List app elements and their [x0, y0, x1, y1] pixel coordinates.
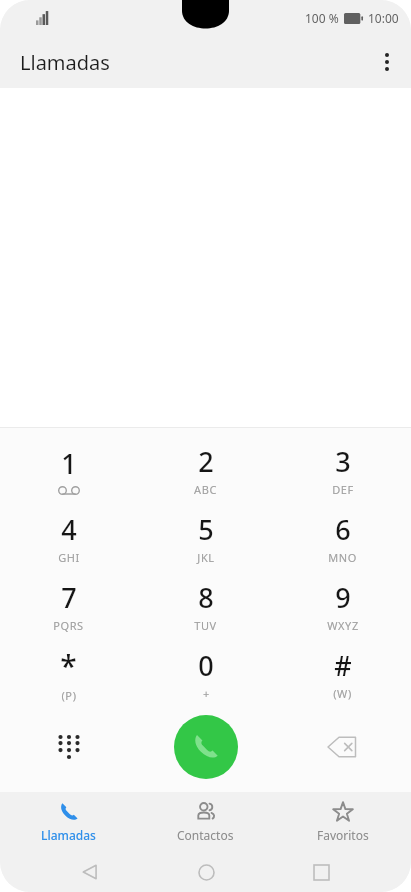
staticText: WXYZ [327, 618, 359, 633]
button[interactable]: # [274, 640, 411, 708]
staticText: ABC [194, 482, 217, 497]
button[interactable]: Recents [301, 852, 341, 892]
staticText: 4 [61, 511, 77, 548]
staticText: 6 [335, 511, 351, 548]
button[interactable]: 9 [274, 572, 411, 640]
staticText: 9 [335, 579, 351, 616]
button[interactable]: Call [174, 715, 238, 779]
staticText: (W) [333, 686, 352, 701]
button[interactable]: 1 [0, 436, 137, 504]
staticText: 100 % [305, 10, 339, 26]
staticText: Favoritos [317, 827, 369, 843]
button[interactable]: 6 [274, 504, 411, 572]
staticText: JKL [197, 550, 215, 565]
staticText: * [60, 645, 77, 686]
button[interactable]: Contactos [137, 792, 274, 852]
button[interactable]: More options [363, 38, 411, 86]
staticText: 2 [198, 443, 214, 480]
staticText: 0 [198, 647, 214, 684]
staticText: Contactos [177, 827, 234, 843]
button[interactable]: Back [70, 852, 110, 892]
button[interactable]: 4 [0, 504, 137, 572]
staticText: 10:00 [368, 10, 399, 26]
staticText: DEF [332, 482, 354, 497]
staticText: 5 [198, 511, 214, 548]
staticText: 3 [335, 443, 351, 480]
button[interactable]: Delete [274, 708, 411, 786]
staticText: 1 [61, 445, 77, 482]
staticText: Llamadas [20, 49, 110, 76]
staticText: MNO [328, 550, 357, 565]
staticText: (P) [61, 688, 77, 703]
staticText: Llamadas [41, 827, 96, 843]
staticText: GHI [58, 550, 80, 565]
staticText: + [203, 686, 210, 701]
staticText: 8 [198, 579, 214, 616]
button[interactable]: Llamadas [0, 792, 137, 852]
button[interactable]: 3 [274, 436, 411, 504]
button[interactable]: Favoritos [274, 792, 411, 852]
staticText: # [334, 647, 352, 684]
button[interactable]: 5 [137, 504, 274, 572]
button[interactable]: 0 [137, 640, 274, 708]
staticText: PQRS [53, 618, 84, 633]
button[interactable]: 2 [137, 436, 274, 504]
staticText: TUV [194, 618, 217, 633]
button[interactable]: * [0, 640, 137, 708]
button[interactable]: Home [186, 852, 226, 892]
button[interactable]: 7 [0, 572, 137, 640]
button[interactable]: Keypad [0, 708, 137, 786]
staticText: 7 [61, 579, 77, 616]
button[interactable]: 8 [137, 572, 274, 640]
